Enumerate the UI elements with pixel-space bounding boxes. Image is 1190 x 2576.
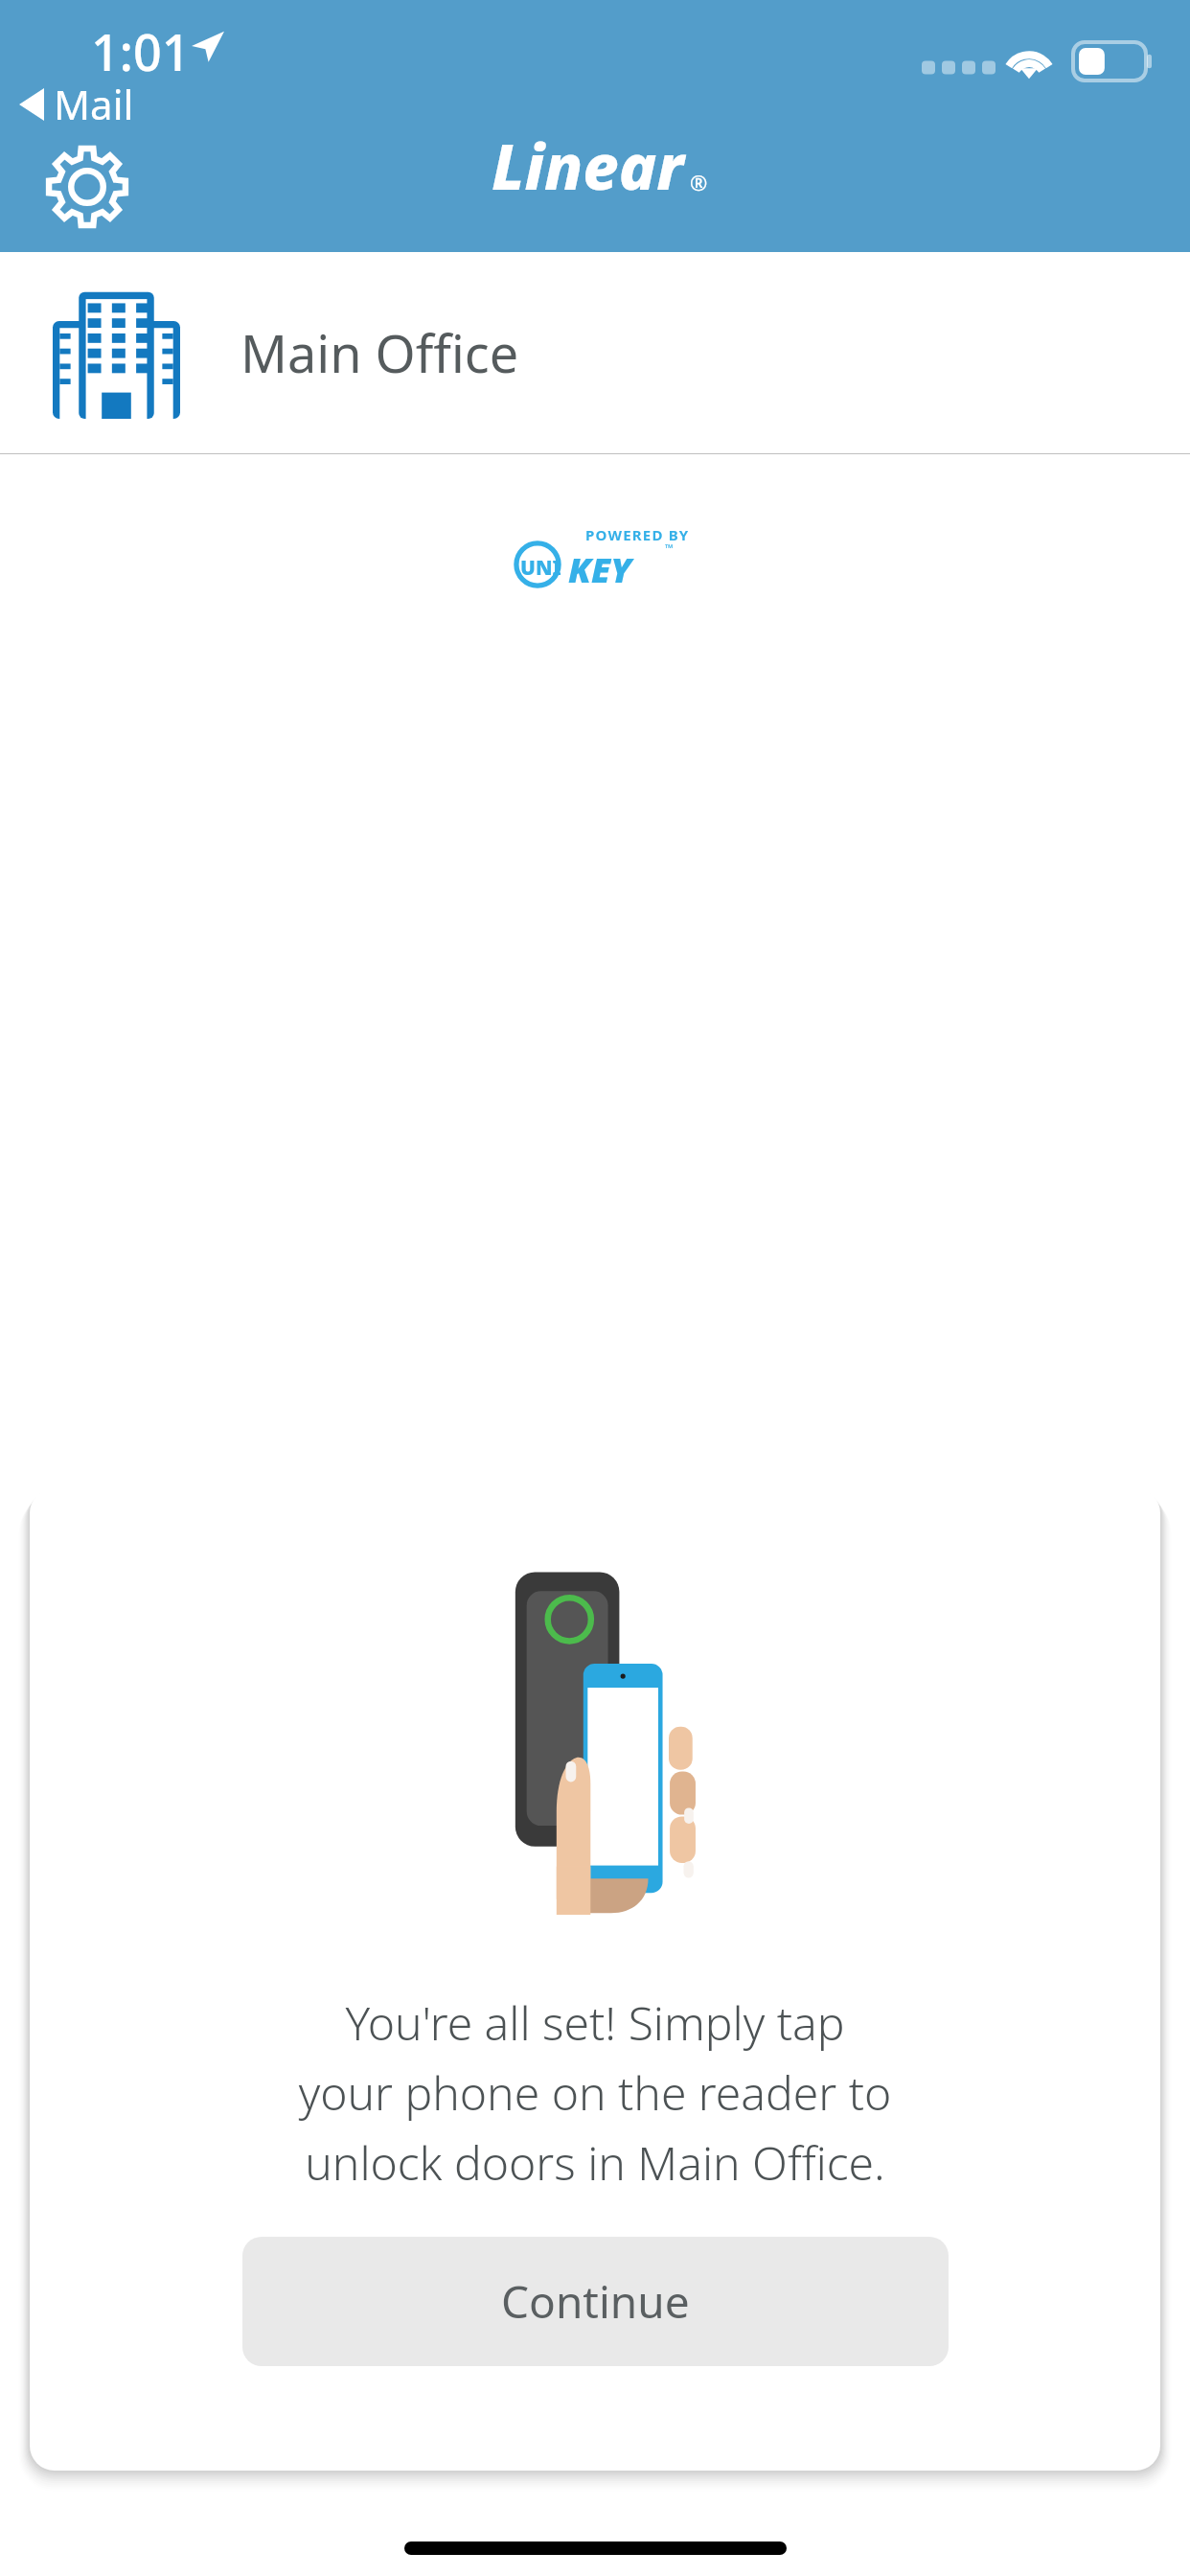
staticText: ® bbox=[690, 168, 708, 196]
staticText: Main Office bbox=[240, 317, 519, 388]
staticText: You're all set! Simply tap your phone on… bbox=[30, 1991, 1160, 2194]
button[interactable]: Continue bbox=[242, 2237, 949, 2366]
staticText: ™ bbox=[665, 540, 674, 555]
button[interactable]: Main Office bbox=[0, 252, 1190, 453]
staticText: Mail bbox=[54, 77, 134, 131]
staticText: 1:01 bbox=[91, 17, 191, 85]
staticText: Linear bbox=[492, 122, 684, 208]
button[interactable]: Mail bbox=[19, 77, 134, 131]
staticText: Continue bbox=[501, 2271, 690, 2332]
button[interactable]: Settings bbox=[46, 146, 128, 228]
staticText: KEY bbox=[568, 546, 632, 593]
staticText: POWERED BY bbox=[585, 525, 690, 544]
staticText: UNI bbox=[520, 554, 561, 582]
